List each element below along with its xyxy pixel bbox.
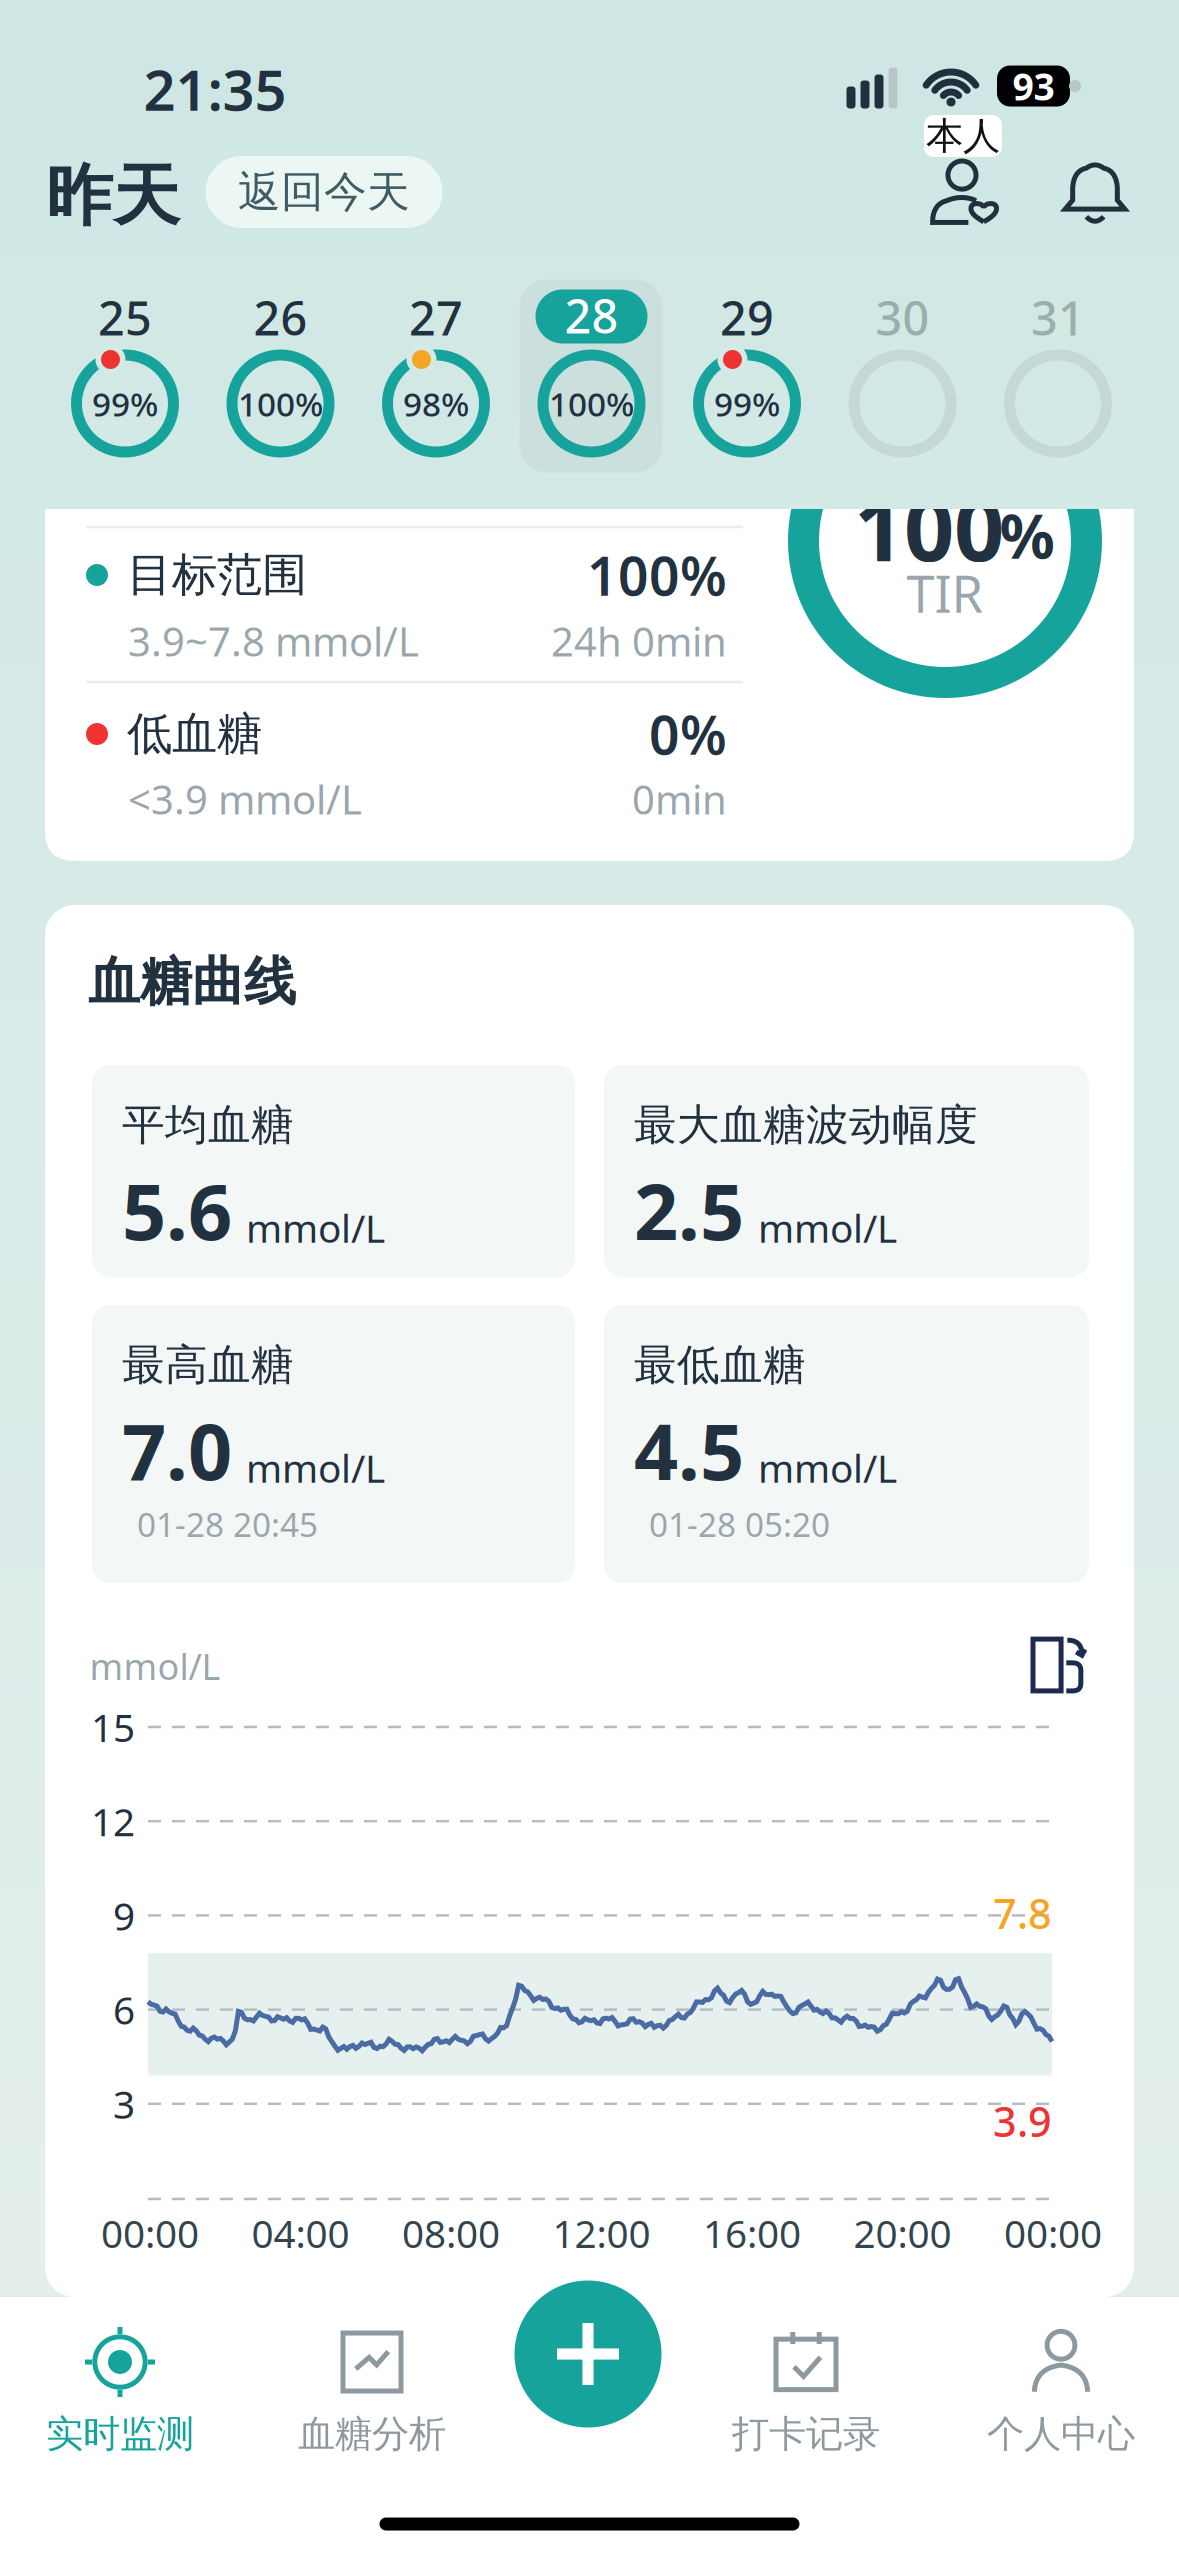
staticText: 最低血糖 bbox=[634, 1339, 806, 1391]
staticText: TIR bbox=[906, 559, 983, 627]
button[interactable]: 本人 bbox=[929, 123, 1003, 227]
staticText: 30 bbox=[875, 286, 929, 348]
button[interactable]: 添加记录 bbox=[514, 2280, 661, 2427]
button[interactable]: 个人中心 bbox=[971, 2322, 1151, 2462]
staticText: 9 bbox=[113, 1890, 135, 1941]
staticText: 100 bbox=[854, 469, 1004, 585]
staticText: 6 bbox=[113, 1984, 135, 2035]
staticText: 血糖曲线 bbox=[88, 950, 296, 1014]
staticText: 7.0 bbox=[122, 1399, 232, 1501]
staticText: 24h 0min bbox=[551, 614, 727, 667]
button[interactable]: 29 bbox=[675, 279, 818, 472]
staticText: mmol/L bbox=[758, 1202, 897, 1253]
staticText: 3 bbox=[113, 2078, 135, 2129]
staticText: 25 bbox=[98, 286, 152, 348]
staticText: 00:00 bbox=[1004, 2207, 1102, 2259]
staticText: 12:00 bbox=[552, 2207, 650, 2259]
staticText: 5.6 bbox=[122, 1159, 232, 1261]
staticText: 2.5 bbox=[634, 1159, 744, 1261]
staticText: 100% bbox=[238, 381, 323, 426]
staticText: mmol/L bbox=[758, 1442, 897, 1493]
staticText: 12 bbox=[91, 1795, 135, 1847]
staticText: 01-28 05:20 bbox=[649, 1502, 830, 1546]
staticText: 最大血糖波动幅度 bbox=[634, 1099, 978, 1151]
staticText: 29 bbox=[720, 286, 774, 348]
staticText: <3.9 mmol/L bbox=[128, 772, 362, 825]
staticText: 21:35 bbox=[143, 52, 286, 126]
staticText: 28 bbox=[564, 284, 618, 346]
staticText: 低血糖 bbox=[127, 706, 262, 762]
staticText: 26 bbox=[253, 286, 307, 348]
staticText: 100% bbox=[587, 540, 727, 610]
staticText: 实时监测 bbox=[46, 2411, 194, 2457]
staticText: mmol/L bbox=[246, 1442, 385, 1493]
staticText: 100% bbox=[549, 381, 634, 426]
staticText: 最高血糖 bbox=[122, 1339, 294, 1391]
staticText: 31 bbox=[1031, 286, 1085, 348]
button[interactable]: 返回今天 bbox=[205, 156, 442, 228]
staticText: 3.9 bbox=[993, 2094, 1052, 2148]
staticText: mmol/L bbox=[89, 1642, 220, 1690]
staticText: 04:00 bbox=[251, 2207, 349, 2259]
staticText: 15 bbox=[91, 1701, 135, 1753]
staticText: 93 bbox=[1012, 61, 1054, 111]
staticText: 01-28 20:45 bbox=[137, 1502, 318, 1546]
staticText: 平均血糖 bbox=[122, 1099, 294, 1151]
staticText: 血糖分析 bbox=[298, 2411, 446, 2457]
staticText: 16:00 bbox=[703, 2207, 801, 2259]
button[interactable]: 30 bbox=[831, 279, 974, 472]
staticText: 27 bbox=[409, 286, 463, 348]
staticText: mmol/L bbox=[246, 1202, 385, 1253]
staticText: 打卡记录 bbox=[732, 2411, 880, 2457]
staticText: 个人中心 bbox=[987, 2411, 1135, 2457]
button[interactable]: 26 bbox=[209, 279, 352, 472]
staticText: 4.5 bbox=[634, 1399, 744, 1501]
button[interactable]: 实时监测 bbox=[30, 2322, 210, 2462]
button[interactable]: 25 bbox=[53, 279, 196, 472]
button[interactable]: 通知 bbox=[1064, 163, 1126, 227]
staticText: 98% bbox=[403, 381, 469, 426]
staticText: 99% bbox=[714, 381, 780, 426]
staticText: 本人 bbox=[926, 113, 1000, 159]
button[interactable]: 31 bbox=[986, 279, 1129, 472]
staticText: 3.9~7.8 mmol/L bbox=[128, 614, 419, 667]
staticText: 7.8 bbox=[993, 1886, 1052, 1940]
staticText: 0% bbox=[649, 699, 727, 769]
button[interactable]: 打卡记录 bbox=[716, 2322, 896, 2462]
staticText: 99% bbox=[92, 381, 158, 426]
staticText: 目标范围 bbox=[127, 547, 307, 603]
button[interactable]: 27 bbox=[364, 279, 507, 472]
staticText: 00:00 bbox=[101, 2207, 199, 2259]
staticText: 昨天 bbox=[46, 155, 180, 237]
staticText: 返回今天 bbox=[238, 166, 410, 218]
staticText: 08:00 bbox=[402, 2207, 500, 2259]
staticText: % bbox=[999, 494, 1054, 576]
staticText: 20:00 bbox=[853, 2207, 951, 2259]
button[interactable]: 28 bbox=[520, 279, 663, 472]
button[interactable]: 血糖分析 bbox=[282, 2322, 462, 2462]
staticText: 0min bbox=[632, 772, 727, 825]
